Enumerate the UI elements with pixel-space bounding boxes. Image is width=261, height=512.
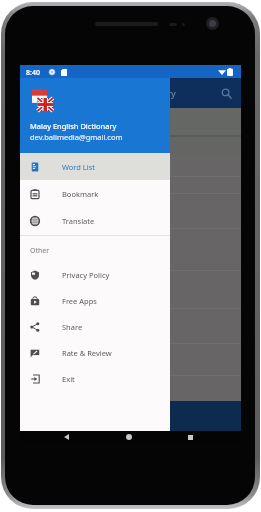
staticText: Word List	[62, 162, 96, 172]
staticText: Malay English Dictionary	[70, 87, 176, 99]
button[interactable]: Search	[217, 84, 235, 102]
staticText: Malay English Dictionary	[30, 121, 117, 131]
staticText: Other	[30, 246, 50, 256]
button[interactable]: Free Apps	[20, 288, 170, 314]
button[interactable]: Bookmark	[20, 180, 170, 207]
button[interactable]: Word List	[20, 153, 170, 180]
button[interactable]: Recent apps	[177, 431, 203, 443]
button[interactable]: Home	[116, 431, 142, 443]
staticText: Translate	[62, 216, 95, 226]
staticText: Exit	[62, 374, 75, 384]
button[interactable]: Back	[53, 431, 79, 443]
staticText: Free Apps	[62, 296, 97, 306]
staticText: dev.balimedia@gmail.com	[30, 132, 123, 142]
staticText: Share	[62, 322, 83, 332]
button[interactable]: Translate	[20, 207, 170, 234]
button[interactable]: Privacy Policy	[20, 262, 170, 288]
staticText: Privacy Policy	[62, 270, 110, 280]
button[interactable]: Rate & Review	[20, 340, 170, 366]
button[interactable]: Exit	[20, 366, 170, 392]
staticText: Bookmark	[62, 189, 99, 199]
staticText: Rate & Review	[62, 348, 112, 358]
button[interactable]: Share	[20, 314, 170, 340]
staticText: 8:40	[26, 68, 40, 78]
